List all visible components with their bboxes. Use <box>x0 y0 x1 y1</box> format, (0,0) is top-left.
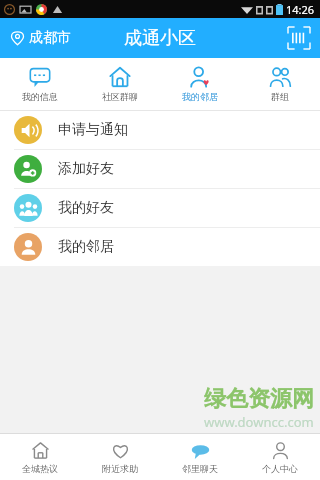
staticText: 群组 <box>271 91 289 102</box>
button[interactable]: 附近求助 <box>80 434 160 480</box>
staticText: 我的好友 <box>58 199 114 217</box>
button[interactable]: 成都市 <box>8 25 73 51</box>
staticText: 成通小区 <box>124 27 196 50</box>
staticText: 14:26 <box>286 2 315 17</box>
button[interactable]: 全城热议 <box>0 434 80 480</box>
button[interactable]: 我的邻居 <box>160 58 240 110</box>
button[interactable]: 邻里聊天 <box>160 434 240 480</box>
staticText: 我的邻居 <box>58 238 114 256</box>
staticText: 个人中心 <box>262 463 298 474</box>
button[interactable]: 我的好友 <box>0 189 320 227</box>
staticText: 附近求助 <box>102 463 138 474</box>
staticText: 全城热议 <box>22 463 58 474</box>
button[interactable]: 添加好友 <box>0 150 320 188</box>
staticText: 绿色资源网 <box>204 385 314 413</box>
button[interactable]: 扫一扫 <box>288 27 310 49</box>
button[interactable]: 群组 <box>240 58 320 110</box>
staticText: 社区群聊 <box>102 91 138 102</box>
staticText: 添加好友 <box>58 160 114 178</box>
button[interactable]: 我的信息 <box>0 58 80 110</box>
staticText: 我的信息 <box>22 91 58 102</box>
staticText: 我的邻居 <box>182 91 218 102</box>
staticText: 邻里聊天 <box>182 463 218 474</box>
button[interactable]: 我的邻居 <box>0 228 320 266</box>
staticText: www.downcc.com <box>204 413 314 431</box>
button[interactable]: 社区群聊 <box>80 58 160 110</box>
staticText: 申请与通知 <box>58 121 128 139</box>
button[interactable]: 申请与通知 <box>0 111 320 149</box>
button[interactable]: 个人中心 <box>240 434 320 480</box>
staticText: 成都市 <box>29 29 71 47</box>
